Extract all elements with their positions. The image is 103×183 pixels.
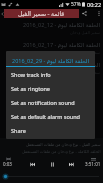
button[interactable]: Set as ringtone	[6, 81, 95, 95]
staticText: 00:22	[87, 1, 102, 8]
staticText: 3:51:01	[85, 161, 101, 167]
staticText: 57%	[71, 1, 81, 8]
staticText: Set as notification sound	[11, 99, 75, 106]
staticText: الحلقة الكاملة - نوع ودخان من ملفات المس…	[22, 149, 101, 154]
button[interactable]: Set as notification sound	[6, 95, 95, 109]
staticText: Set as default alarm sound	[11, 113, 80, 120]
button[interactable]: Show track info	[6, 67, 95, 81]
button[interactable]: Shuffle	[4, 156, 12, 161]
staticText: Share	[11, 127, 26, 134]
staticText: 2016_02_12 - الحلقة الكاملة ليوم	[23, 21, 101, 28]
staticText: سمير الفيل - نوع ودخان من ملفات المستعمل	[26, 142, 101, 147]
button[interactable]: More options	[95, 9, 103, 18]
staticText: Set as ringtone	[11, 85, 50, 92]
staticText: 0:03	[3, 161, 12, 167]
button[interactable]: Share	[6, 123, 95, 137]
staticText: سمير الفيل ودخان	[70, 30, 101, 35]
staticText: 2016_02_29 - الحلقة الكاملة ليوم	[12, 57, 90, 64]
button[interactable]: Set as default alarm sound	[6, 109, 95, 123]
button[interactable]: 2016_02_29 - الحلقة الكاملة ليوم	[0, 59, 103, 79]
staticText: 2016_02_29 - الحلقة الكاملة ليوم	[23, 61, 101, 68]
staticText: قائمة - سمير الفيل	[18, 10, 65, 18]
button[interactable]: Seek	[1, 173, 10, 180]
button[interactable]: Share	[79, 9, 90, 18]
staticText: 2016_02_17 - الحلقة الكاملة ليوم	[23, 41, 101, 48]
button[interactable]: Previous	[22, 154, 42, 174]
staticText: سمير الفيل ودخان	[70, 70, 101, 75]
button[interactable]: 2016_02_12 - الحلقة الكاملة ليوم	[0, 19, 103, 39]
button[interactable]: Back	[0, 9, 4, 18]
button[interactable]: 2016_02_17 - الحلقة الكاملة ليوم	[0, 39, 103, 59]
button[interactable]: Pause	[42, 154, 62, 174]
staticText: سمير الفيل ودخان	[70, 50, 101, 55]
staticText: Show track info	[11, 71, 51, 78]
button[interactable]: Next	[61, 154, 81, 174]
button[interactable]: Repeat	[89, 156, 97, 161]
